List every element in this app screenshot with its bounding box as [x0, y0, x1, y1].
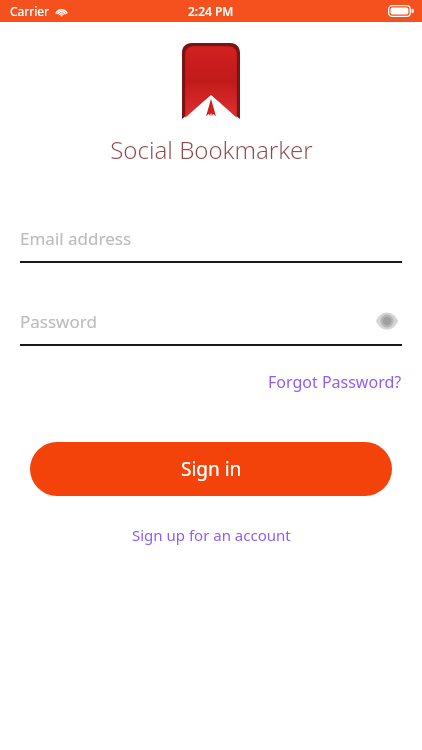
staticText: 2:24 PM — [188, 3, 234, 19]
staticText: Sign up for an account — [132, 525, 291, 545]
staticText: Forgot Password? — [268, 371, 402, 393]
button[interactable]: Forgot Password? — [264, 367, 406, 397]
button[interactable]: Show password — [372, 306, 402, 336]
button[interactable]: Sign up for an account — [124, 521, 299, 549]
staticText: Social Bookmarker — [110, 133, 313, 166]
staticText: Password — [20, 310, 97, 333]
staticText: Carrier — [10, 3, 50, 19]
button[interactable]: Email address — [20, 223, 402, 263]
staticText: Email address — [20, 227, 132, 250]
button[interactable]: Password — [20, 306, 372, 336]
button[interactable]: Sign in — [30, 442, 392, 496]
staticText: Sign in — [181, 456, 242, 482]
